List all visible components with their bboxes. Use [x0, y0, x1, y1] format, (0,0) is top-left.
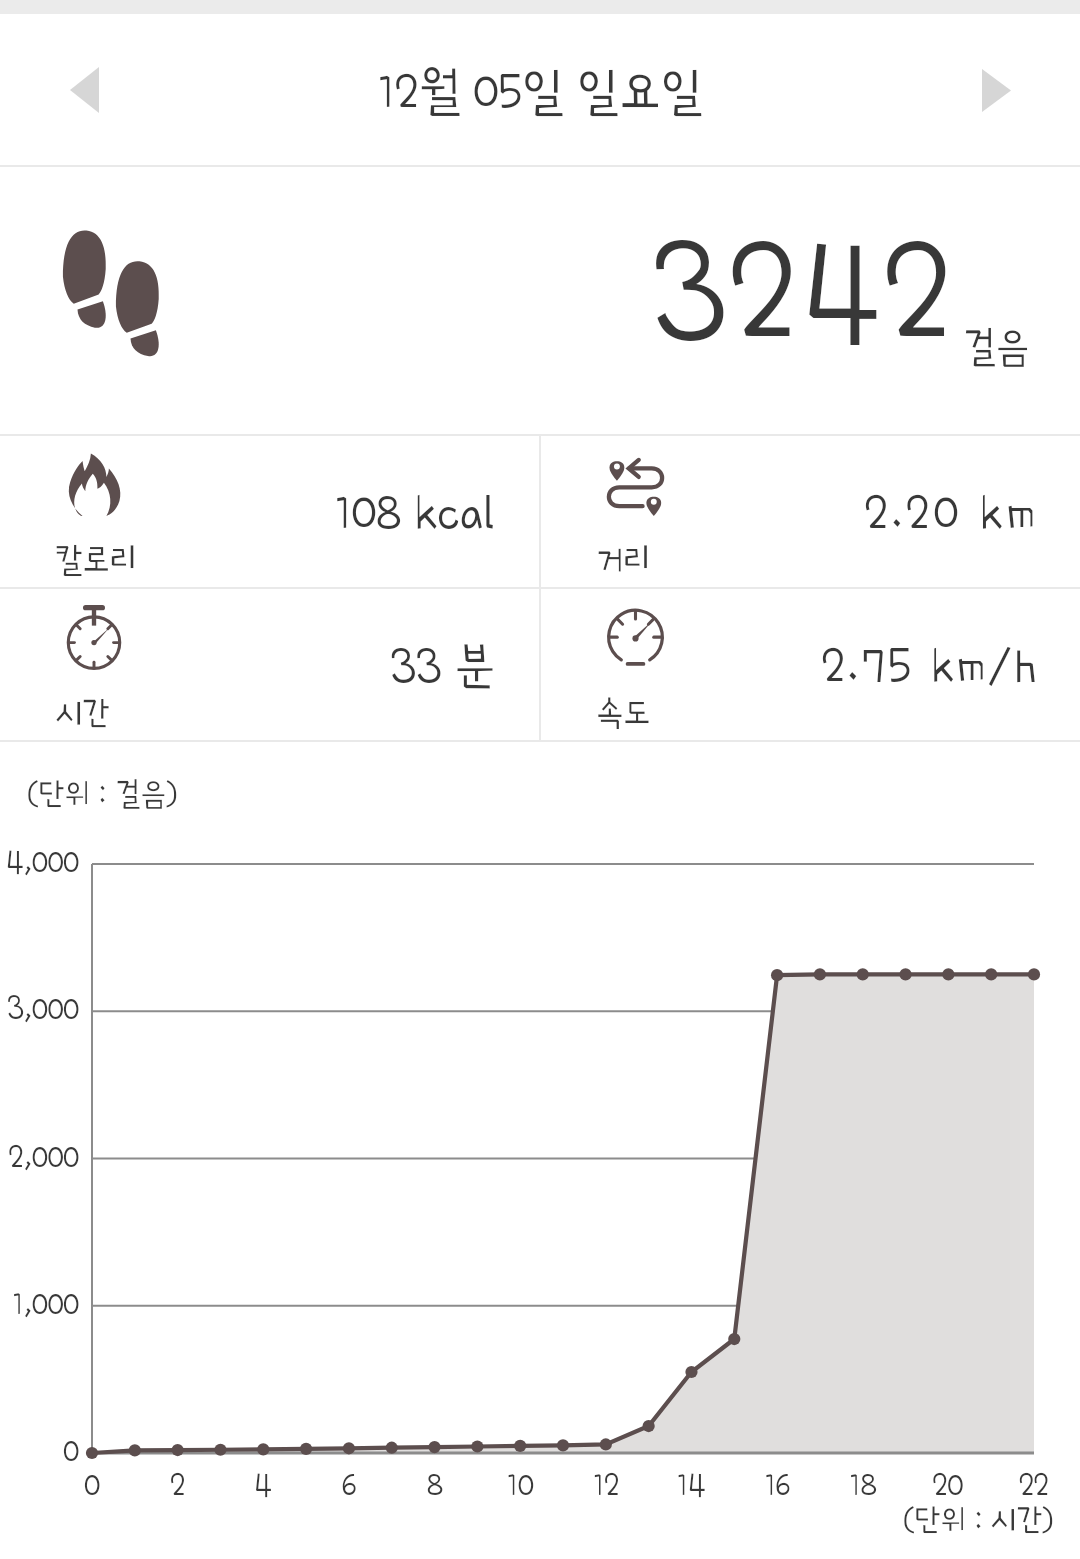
- staticText: 14: [651, 1469, 731, 1502]
- staticText: 20: [908, 1469, 988, 1502]
- staticText: 18: [823, 1469, 903, 1502]
- button[interactable]: 거리: [541, 436, 1080, 587]
- staticText: 3242: [651, 219, 957, 367]
- staticText: 16: [737, 1469, 817, 1502]
- staticText: 3,000: [1, 993, 79, 1026]
- button[interactable]: 속도: [541, 589, 1080, 740]
- staticText: 2.75 km/h: [822, 640, 1039, 691]
- button[interactable]: Next day: [946, 40, 1046, 140]
- staticText: 2,000: [1, 1141, 79, 1174]
- button[interactable]: 시간: [0, 589, 539, 740]
- staticText: 시간: [55, 696, 110, 730]
- staticText: (단위 : 시간): [903, 1503, 1054, 1535]
- staticText: 33 분: [390, 640, 495, 691]
- staticText: 2.20 km: [865, 487, 1040, 538]
- staticText: 6: [309, 1469, 389, 1502]
- staticText: (단위 : 걸음): [27, 777, 178, 809]
- staticText: 거리: [596, 543, 651, 577]
- staticText: 12: [566, 1469, 646, 1502]
- staticText: 칼로리: [55, 543, 138, 577]
- staticText: 0: [52, 1469, 132, 1502]
- staticText: 4,000: [1, 846, 79, 879]
- button[interactable]: 3242: [0, 167, 1080, 434]
- staticText: 10: [480, 1469, 560, 1502]
- staticText: 걸음: [962, 325, 1030, 367]
- staticText: 22: [994, 1469, 1074, 1502]
- button[interactable]: Previous day: [34, 40, 134, 140]
- button[interactable]: 칼로리: [0, 436, 539, 587]
- staticText: 4: [223, 1469, 303, 1502]
- staticText: 0: [1, 1435, 79, 1468]
- staticText: 108 kcal: [334, 487, 495, 538]
- staticText: 8: [395, 1469, 475, 1502]
- staticText: 속도: [596, 696, 651, 730]
- staticText: 1,000: [1, 1288, 79, 1321]
- staticText: 12월 05일 일요일: [377, 65, 703, 117]
- staticText: 2: [138, 1469, 218, 1502]
